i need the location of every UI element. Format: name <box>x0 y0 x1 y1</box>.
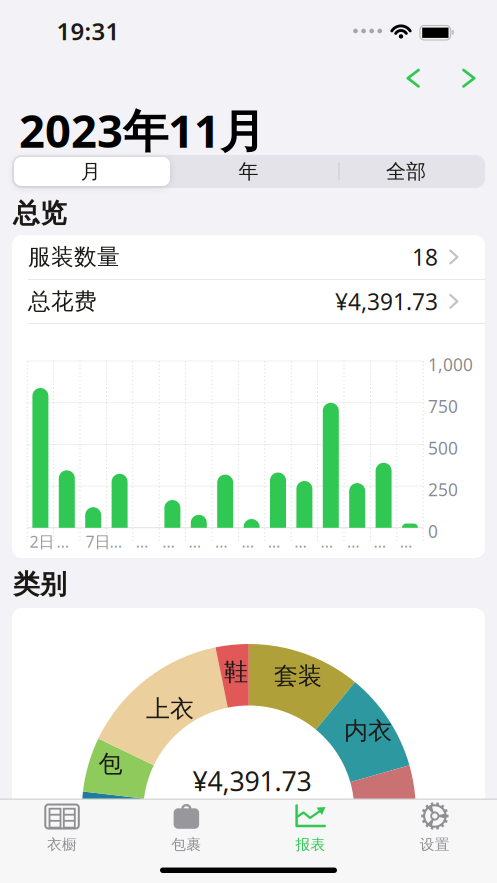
button[interactable]: 包裹 <box>124 799 248 859</box>
staticText: ¥4,391.73 <box>192 763 311 799</box>
staticText: 750 <box>428 395 458 418</box>
staticText: 年 <box>238 159 258 184</box>
button[interactable]: 总花费 <box>12 280 485 323</box>
staticText: 类别 <box>13 568 67 601</box>
staticText: 18 <box>412 242 438 272</box>
staticText: … <box>373 531 386 552</box>
staticText: 内衣 <box>344 716 392 746</box>
staticText: … <box>56 531 69 552</box>
staticText: 设置 <box>420 835 450 853</box>
staticText: 19:31 <box>56 15 119 47</box>
button[interactable]: 全部 <box>327 155 485 188</box>
staticText: 2023年11月 <box>19 100 265 160</box>
staticText: 服装数量 <box>28 243 120 271</box>
staticText: 全部 <box>386 159 426 184</box>
button[interactable]: 服装数量 <box>12 235 485 279</box>
staticText: … <box>162 531 175 552</box>
button[interactable]: 报表 <box>248 799 373 859</box>
staticText: … <box>189 531 202 552</box>
staticText: … <box>215 531 228 552</box>
staticText: … <box>268 531 281 552</box>
button[interactable]: 设置 <box>373 799 497 859</box>
staticText: 套装 <box>274 661 322 691</box>
staticText: … <box>109 531 122 552</box>
staticText: ¥4,391.73 <box>335 286 438 316</box>
staticText: 包裹 <box>171 835 201 853</box>
staticText: 总览 <box>13 197 67 230</box>
button[interactable]: 下个月 <box>458 66 478 90</box>
staticText: 月 <box>81 159 101 184</box>
staticText: … <box>136 531 149 552</box>
button[interactable]: 衣橱 <box>0 799 124 859</box>
staticText: 7日 <box>85 531 110 552</box>
button[interactable]: 上个月 <box>404 66 424 90</box>
staticText: 2日 <box>29 531 54 552</box>
staticText: 报表 <box>296 835 326 853</box>
staticText: 总花费 <box>28 287 97 315</box>
staticText: 包 <box>98 749 122 779</box>
staticText: 1,000 <box>428 353 473 376</box>
staticText: 250 <box>428 478 458 501</box>
staticText: 衣橱 <box>47 835 77 853</box>
staticText: … <box>294 531 307 552</box>
staticText: 500 <box>428 436 458 459</box>
staticText: 0 <box>428 520 438 543</box>
staticText: … <box>241 531 254 552</box>
button[interactable]: 年 <box>170 155 327 188</box>
staticText: … <box>400 531 413 552</box>
staticText: … <box>347 531 360 552</box>
staticText: … <box>321 531 334 552</box>
staticText: 上衣 <box>146 694 194 724</box>
button[interactable]: 月 <box>12 155 170 188</box>
staticText: 鞋 <box>224 657 248 687</box>
